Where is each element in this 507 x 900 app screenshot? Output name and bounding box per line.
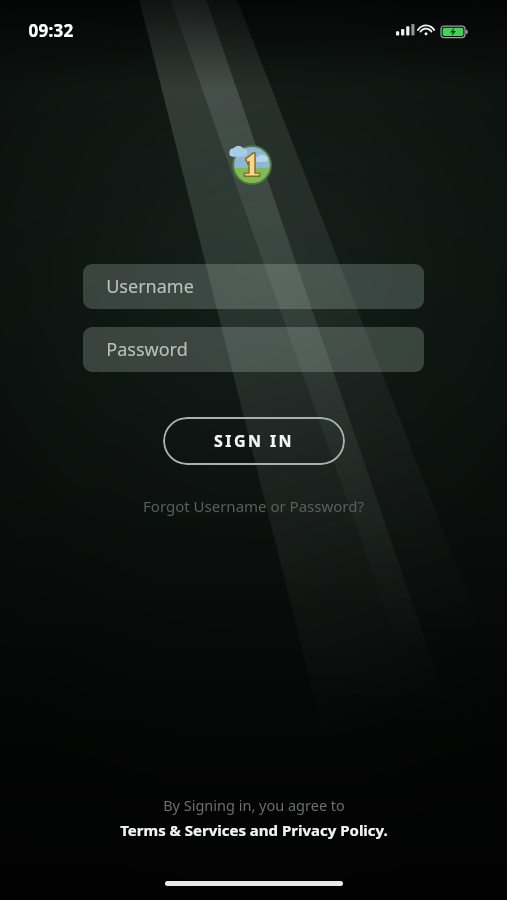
other: App logo	[231, 144, 273, 186]
other: Status icons	[396, 22, 486, 40]
staticText: Forgot Username or Password?	[143, 496, 364, 516]
staticText: Username	[106, 274, 194, 299]
button[interactable]: Username	[83, 264, 424, 309]
staticText: SIGN IN	[214, 430, 294, 452]
button[interactable]: SIGN IN	[163, 417, 345, 465]
button[interactable]: Terms & Services and Privacy Policy.	[116, 820, 392, 840]
staticText: By Signing in, you agree to	[163, 795, 345, 815]
staticText: Terms & Services and Privacy Policy.	[120, 820, 388, 840]
button[interactable]: Password	[83, 327, 424, 372]
staticText: 09:32	[28, 19, 74, 42]
button[interactable]: Forgot Username or Password?	[0, 491, 507, 521]
staticText: Password	[106, 337, 188, 362]
